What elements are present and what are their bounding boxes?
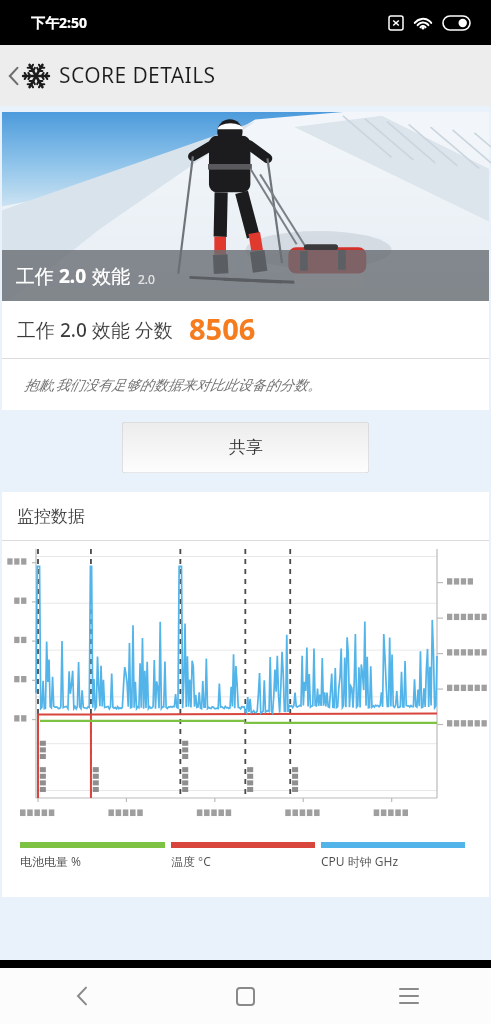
- staticText: 下午2:50: [31, 13, 87, 32]
- staticText: 效能: [87, 263, 130, 289]
- staticText: 工作: [16, 263, 59, 289]
- button[interactable]: Recent apps: [327, 968, 491, 1024]
- button[interactable]: Home: [163, 968, 327, 1024]
- staticText: 共享: [229, 437, 263, 458]
- staticText: 工作 2.0 效能 分数: [17, 317, 173, 343]
- staticText: 抱歉,我们没有足够的数据来对比此设备的分数。: [24, 375, 322, 394]
- staticText: 8506: [189, 309, 256, 348]
- staticText: 监控数据: [17, 506, 85, 527]
- staticText: CPU 时钟 GHz: [321, 853, 399, 869]
- staticText: 电池电量 %: [20, 853, 82, 869]
- button[interactable]: 共享: [122, 422, 369, 473]
- staticText: 2.0: [59, 263, 87, 289]
- button[interactable]: Back: [5, 55, 218, 96]
- staticText: 2.0: [138, 271, 155, 287]
- staticText: SCORE DETAILS: [59, 61, 216, 90]
- button[interactable]: Back: [0, 968, 163, 1024]
- staticText: 温度 °C: [171, 853, 211, 869]
